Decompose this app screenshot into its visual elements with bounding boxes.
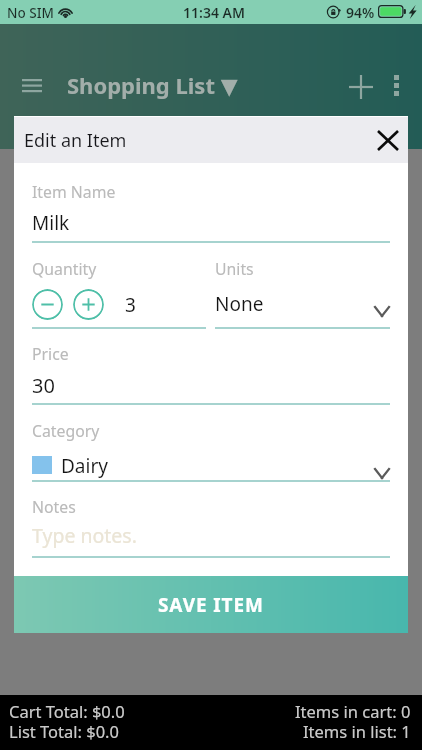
button[interactable]: More options [376, 65, 416, 105]
staticText: No SIM [7, 4, 54, 22]
button[interactable]: Add item [339, 65, 383, 109]
staticText: Quantity [32, 258, 97, 280]
staticText: Notes [32, 496, 76, 518]
staticText: 94% [346, 3, 375, 22]
button[interactable]: Decrease quantity [32, 289, 63, 320]
staticText: None [215, 291, 264, 317]
staticText: List Total: $0.0 [9, 720, 119, 742]
staticText: 11:34 AM [183, 3, 245, 22]
button[interactable]: None [215, 290, 390, 318]
button[interactable]: Increase quantity [73, 289, 104, 320]
staticText: Category [32, 420, 100, 442]
staticText: Items in list: 1 [303, 720, 411, 742]
staticText: Items in cart: 0 [295, 700, 411, 722]
staticText: Edit an Item [24, 128, 127, 153]
staticText: Cart Total: $0.0 [9, 700, 125, 722]
button[interactable]: Shopping List ▼ [67, 70, 238, 100]
staticText: Item Name [32, 181, 116, 203]
staticText: 3 [125, 292, 136, 318]
staticText: Units [215, 258, 254, 280]
staticText: Milk [32, 210, 70, 236]
button[interactable]: SAVE ITEM [14, 576, 408, 633]
button[interactable]: Dairy [32, 453, 390, 479]
staticText: Dairy [61, 453, 108, 479]
staticText: Type notes. [32, 522, 137, 549]
button[interactable]: Open navigation menu [12, 65, 52, 105]
staticText: SAVE ITEM [158, 592, 264, 618]
staticText: Price [32, 343, 69, 365]
button[interactable]: Close dialog [369, 117, 407, 163]
staticText: 30 [32, 372, 55, 399]
